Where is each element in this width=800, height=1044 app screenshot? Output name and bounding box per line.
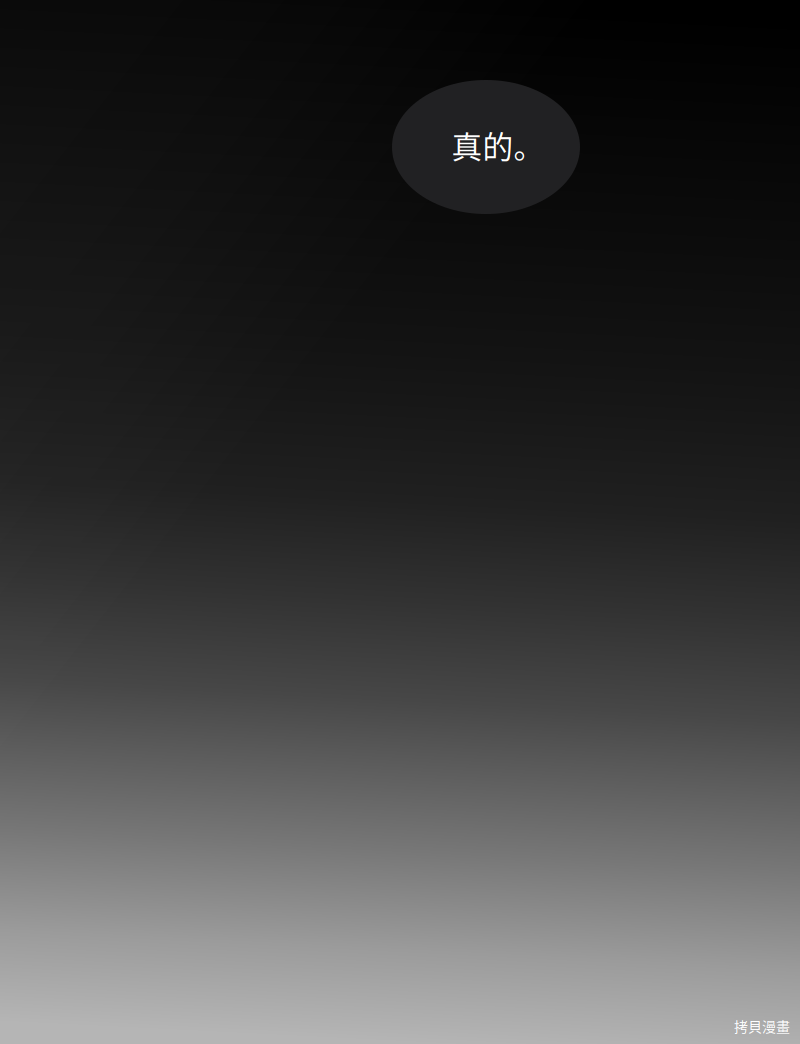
staticText: 真的。 <box>451 123 544 167</box>
staticText: 拷貝漫畫 <box>734 1016 790 1036</box>
